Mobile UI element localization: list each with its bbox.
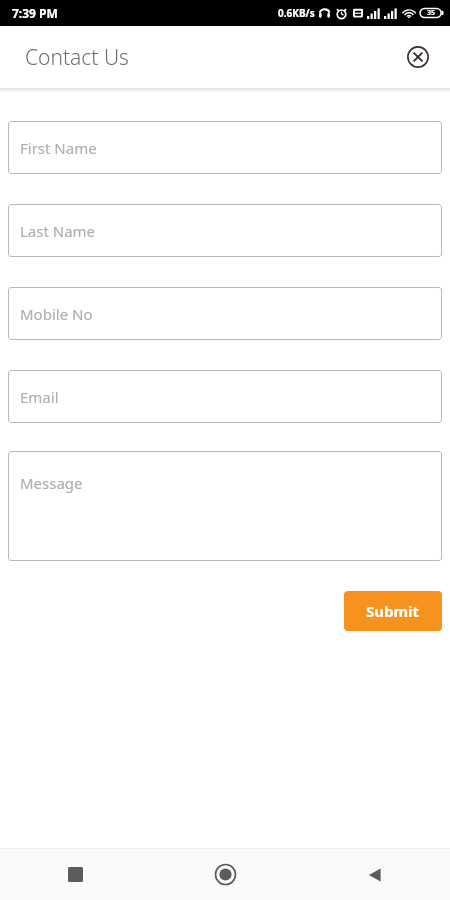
- button[interactable]: Back: [300, 849, 450, 900]
- staticText: Message: [20, 473, 83, 493]
- staticText: Mobile No: [20, 304, 93, 324]
- button[interactable]: Last Name: [8, 204, 442, 257]
- button[interactable]: Email: [8, 370, 442, 423]
- staticText: 0.6KB/s: [278, 6, 315, 20]
- button[interactable]: Recent apps: [0, 849, 150, 900]
- staticText: Contact Us: [25, 43, 129, 72]
- button[interactable]: Mobile No: [8, 287, 442, 340]
- staticText: First Name: [20, 138, 97, 158]
- staticText: 7:39 PM: [12, 5, 58, 21]
- button[interactable]: Close: [398, 37, 438, 77]
- staticText: Last Name: [20, 221, 96, 241]
- staticText: 35: [427, 8, 436, 18]
- button[interactable]: Submit: [344, 591, 442, 631]
- button[interactable]: Message: [8, 451, 442, 561]
- button[interactable]: Home: [150, 849, 300, 900]
- staticText: Email: [20, 387, 59, 407]
- button[interactable]: First Name: [8, 121, 442, 174]
- staticText: Submit: [366, 601, 420, 621]
